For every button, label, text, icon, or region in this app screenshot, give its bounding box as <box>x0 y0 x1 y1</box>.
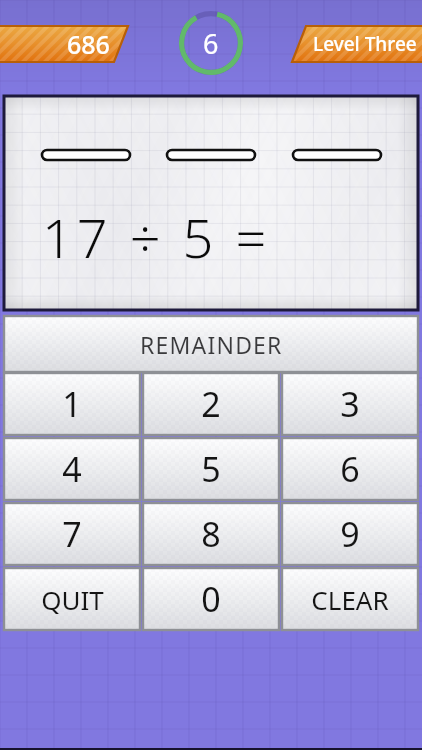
button[interactable]: 1 <box>4 373 140 435</box>
staticText: 4 <box>62 446 82 492</box>
button[interactable]: QUIT <box>4 568 140 630</box>
staticText: 6 <box>340 446 360 492</box>
button[interactable]: CLEAR <box>282 568 418 630</box>
button[interactable]: 8 <box>143 503 279 565</box>
staticText: 17 ÷ 5 = <box>42 200 271 274</box>
staticText: 7 <box>62 511 82 557</box>
staticText: 9 <box>340 511 360 557</box>
staticText: 686 <box>67 27 110 61</box>
staticText: QUIT <box>41 582 104 617</box>
staticText: 0 <box>201 576 221 622</box>
button[interactable]: 5 <box>143 438 279 500</box>
button[interactable]: 686 <box>0 26 128 62</box>
staticText: 2 <box>201 381 221 427</box>
staticText: 3 <box>340 381 360 427</box>
button[interactable]: REMAINDER <box>4 316 418 372</box>
staticText: Level Three <box>313 31 417 57</box>
button[interactable]: 3 <box>282 373 418 435</box>
staticText: 6 <box>203 25 219 62</box>
staticText: CLEAR <box>311 582 389 617</box>
button[interactable]: Level Three <box>292 26 422 62</box>
staticText: 5 <box>201 446 221 492</box>
staticText: 1 <box>62 381 82 427</box>
button[interactable]: 7 <box>4 503 140 565</box>
button[interactable]: 4 <box>4 438 140 500</box>
button[interactable]: 6 <box>282 438 418 500</box>
staticText: 8 <box>201 511 221 557</box>
button[interactable]: 2 <box>143 373 279 435</box>
staticText: REMAINDER <box>140 329 283 360</box>
button[interactable]: 9 <box>282 503 418 565</box>
button[interactable]: Timer 6 seconds <box>177 9 245 77</box>
button[interactable]: 0 <box>143 568 279 630</box>
